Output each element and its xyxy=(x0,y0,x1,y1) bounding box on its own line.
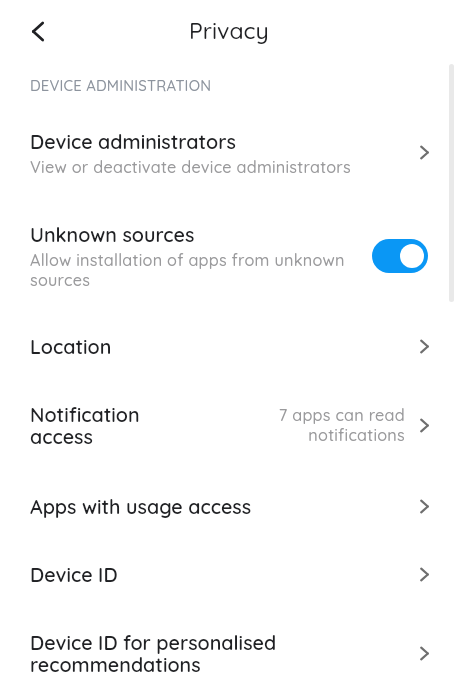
staticText: DEVICE ADMINISTRATION xyxy=(30,76,212,95)
button[interactable]: Notification access xyxy=(0,402,458,449)
button[interactable]: Unknown sources xyxy=(0,222,458,290)
staticText: Allow installation of apps from unknown … xyxy=(30,250,372,290)
button[interactable]: Back xyxy=(17,11,57,51)
button[interactable]: Location xyxy=(0,334,458,359)
button[interactable]: Device ID for personalised recommendatio… xyxy=(0,630,458,677)
staticText: Location xyxy=(30,334,112,359)
button[interactable]: Device administrators xyxy=(0,129,458,177)
button[interactable]: Unknown sources toggle xyxy=(372,239,428,273)
staticText: Privacy xyxy=(189,16,269,45)
staticText: Device ID for personalised recommendatio… xyxy=(30,630,277,677)
staticText: Unknown sources xyxy=(30,222,195,247)
staticText: Device administrators xyxy=(30,129,236,154)
button[interactable]: Device ID xyxy=(0,562,458,587)
button[interactable]: Apps with usage access xyxy=(0,494,458,519)
staticText: Notification access xyxy=(30,402,140,449)
staticText: View or deactivate device administrators xyxy=(30,157,351,177)
staticText: 7 apps can read notifications xyxy=(277,405,405,445)
staticText: Apps with usage access xyxy=(30,494,252,519)
staticText: Device ID xyxy=(30,562,118,587)
